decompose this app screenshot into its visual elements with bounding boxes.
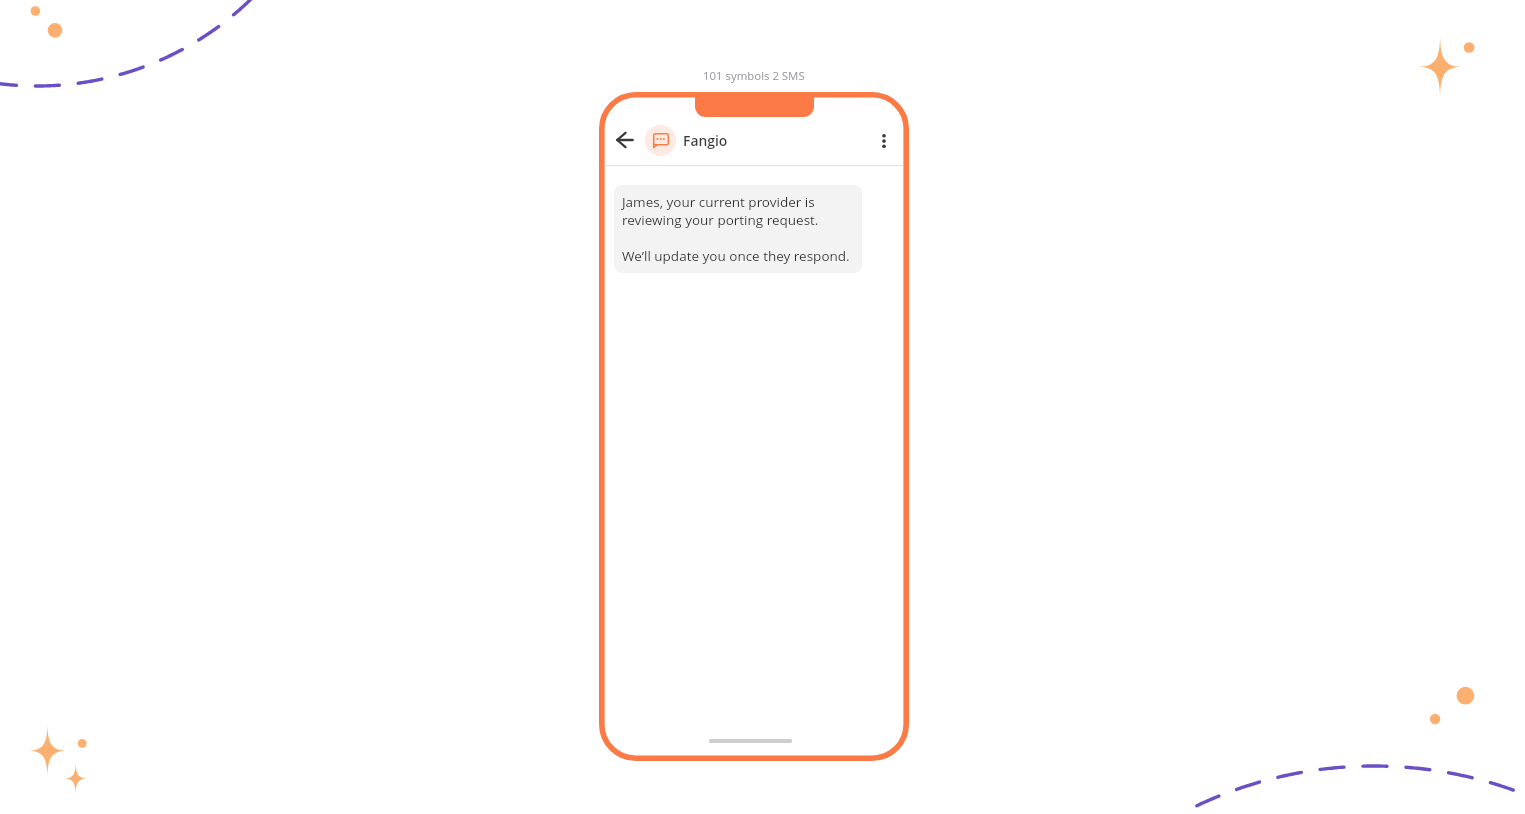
staticText: Fangio (683, 131, 728, 150)
staticText: James, your current provider is reviewin… (622, 192, 862, 264)
button[interactable]: More options (871, 128, 897, 154)
staticText: 101 symbols 2 SMS (703, 68, 805, 84)
button[interactable]: James, your current provider is reviewin… (614, 185, 862, 273)
button[interactable]: Back (612, 127, 638, 153)
